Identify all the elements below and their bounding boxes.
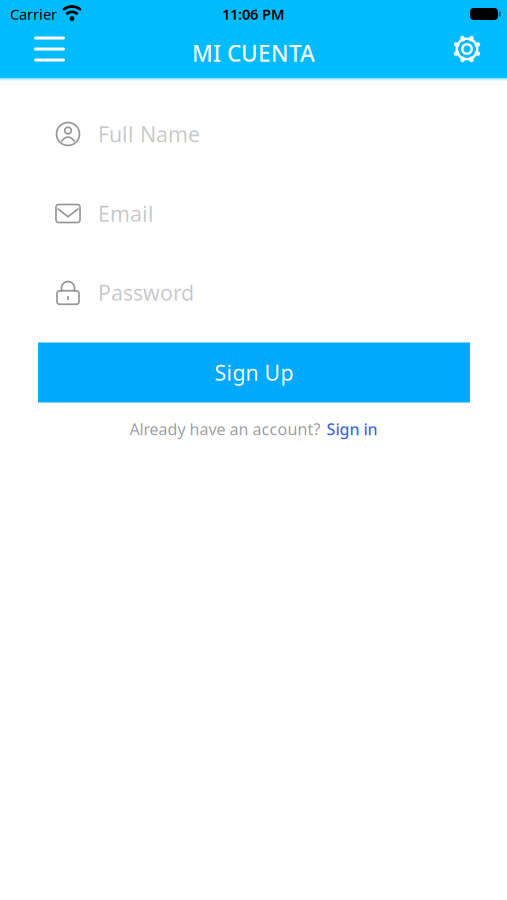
staticText: Carrier bbox=[10, 4, 57, 24]
staticText: Sign in bbox=[326, 418, 377, 440]
staticText: 11:06 PM bbox=[222, 4, 285, 24]
button[interactable]: Sign Up bbox=[38, 342, 470, 402]
staticText: Already have an account? bbox=[129, 418, 320, 440]
button[interactable]: Sign in bbox=[326, 418, 377, 440]
staticText: Password bbox=[98, 278, 194, 307]
staticText: Sign Up bbox=[214, 358, 293, 387]
staticText: MI CUENTA bbox=[192, 38, 315, 68]
button[interactable]: Full Name bbox=[0, 121, 507, 147]
button[interactable]: Email bbox=[0, 200, 507, 226]
button[interactable]: Menu bbox=[0, 36, 65, 61]
button[interactable]: Settings bbox=[453, 35, 507, 63]
staticText: Full Name bbox=[98, 120, 200, 148]
button[interactable]: Password bbox=[0, 279, 507, 305]
staticText: Email bbox=[98, 199, 154, 228]
